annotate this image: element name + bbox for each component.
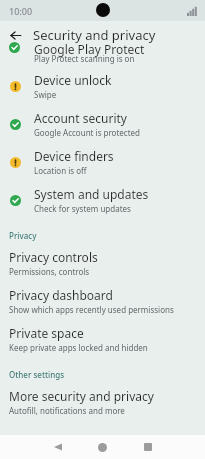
button[interactable]: Back (3, 23, 27, 47)
button[interactable]: Account security (0, 105, 205, 143)
staticText: System and updates (34, 186, 149, 202)
button[interactable]: System and updates (0, 181, 205, 219)
button[interactable]: Google Play Protect (0, 48, 205, 67)
staticText: Keep private apps locked and hidden (9, 342, 148, 353)
button[interactable]: Private space (0, 320, 205, 358)
staticText: Google Account is protected (34, 127, 141, 138)
staticText: Privacy controls (9, 249, 98, 265)
staticText: 10:00 (9, 5, 33, 17)
staticText: Account security (34, 110, 127, 126)
staticText: Swipe (34, 89, 57, 100)
staticText: Device finders (34, 148, 114, 164)
button[interactable]: More security and privacy (0, 383, 205, 421)
staticText: Device unlock (34, 72, 112, 88)
button[interactable]: Privacy dashboard (0, 282, 205, 320)
button[interactable]: Recents (125, 435, 170, 459)
staticText: Play Protect scanning is on (34, 53, 135, 64)
button[interactable]: Device finders (0, 143, 205, 181)
staticText: Autofill, notifications and more (9, 405, 125, 416)
staticText: More security and privacy (9, 388, 154, 404)
staticText: Other settings (9, 369, 65, 380)
staticText: Permissions, controls (9, 266, 90, 277)
staticText: Private space (9, 325, 84, 341)
staticText: Check for system updates (34, 203, 131, 214)
staticText: Privacy (9, 230, 37, 241)
staticText: Location is off (34, 165, 87, 176)
staticText: Security and privacy (33, 26, 156, 44)
staticText: Show which apps recently used permission… (9, 304, 174, 315)
button[interactable]: Device unlock (0, 67, 205, 105)
staticText: Google Play Protect (34, 41, 145, 57)
button[interactable]: Privacy controls (0, 244, 205, 282)
button[interactable]: Back (35, 435, 80, 459)
button[interactable]: Home (80, 435, 125, 459)
staticText: Privacy dashboard (9, 287, 113, 303)
